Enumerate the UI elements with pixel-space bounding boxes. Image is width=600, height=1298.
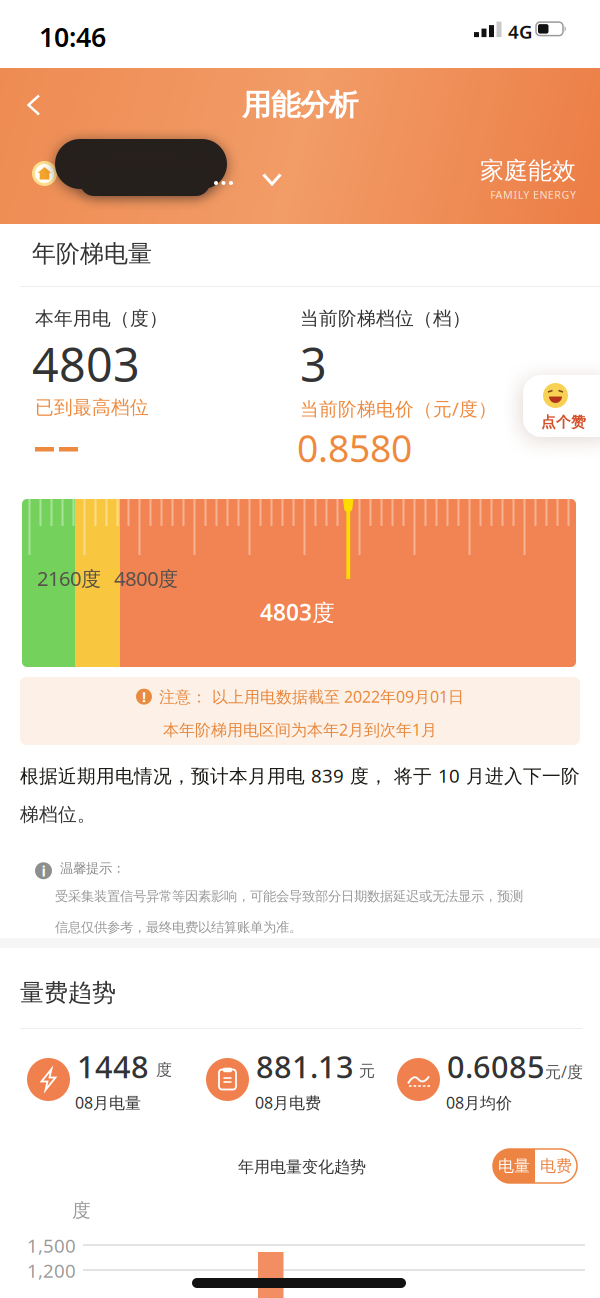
- staticText: 温馨提示：: [60, 860, 125, 876]
- button[interactable]: 选择户号: [12, 132, 292, 198]
- staticText: 年用电量变化趋势: [238, 1157, 366, 1177]
- staticText: 0.6085: [447, 1046, 545, 1087]
- staticText: 度: [156, 1060, 172, 1080]
- staticText: 08月电量: [75, 1092, 141, 1113]
- staticText: 08月电费: [255, 1092, 321, 1113]
- staticText: 10:46: [39, 19, 106, 54]
- staticText: 2160度: [37, 565, 101, 592]
- button[interactable]: Back: [14, 85, 54, 125]
- staticText: 当前阶梯电价（元/度）: [300, 396, 497, 421]
- staticText: 信息仅供参考，最终电费以结算账单为准。: [55, 919, 302, 935]
- button[interactable]: 点个赞: [523, 375, 600, 437]
- staticText: 量费趋势: [20, 978, 116, 1007]
- staticText: 根据近期用电情况，预计本月用电 839 度， 将于 10 月进入下一阶: [20, 763, 580, 788]
- staticText: 3: [300, 333, 327, 395]
- staticText: 元/度: [545, 1061, 583, 1082]
- staticText: 4803: [32, 333, 140, 395]
- button[interactable]: 电费: [535, 1149, 577, 1183]
- staticText: 4803度: [260, 597, 335, 627]
- staticText: 4800度: [114, 565, 178, 592]
- staticText: 点个赞: [541, 413, 586, 431]
- staticText: 年阶梯电量: [32, 239, 152, 268]
- staticText: 元: [359, 1061, 375, 1081]
- staticText: 度: [72, 1199, 91, 1222]
- staticText: 本年用电（度）: [35, 307, 168, 330]
- staticText: 注意： 以上用电数据截至 2022年09月01日: [159, 686, 464, 707]
- staticText: 0.8580: [297, 423, 412, 473]
- staticText: 用能分析: [242, 87, 358, 123]
- staticText: 08月均价: [446, 1092, 512, 1113]
- staticText: 4G: [508, 19, 533, 44]
- staticText: 电费: [540, 1156, 572, 1176]
- staticText: 受采集装置信号异常等因素影响，可能会导致部分日期数据延迟或无法显示，预测: [55, 888, 523, 904]
- staticText: 当前阶梯档位（档）: [300, 307, 471, 330]
- staticText: FAMILY ENERGY: [490, 187, 576, 202]
- staticText: 梯档位。: [20, 803, 96, 826]
- staticText: 1,500: [27, 1233, 76, 1258]
- button[interactable]: 电量: [493, 1149, 535, 1183]
- staticText: 本年阶梯用电区间为本年2月到次年1月: [163, 719, 437, 740]
- staticText: 881.13: [256, 1046, 354, 1087]
- staticText: 家庭能效: [480, 156, 576, 185]
- staticText: 已到最高档位: [35, 396, 149, 419]
- staticText: 1,200: [27, 1258, 76, 1283]
- staticText: 电量: [498, 1156, 530, 1176]
- staticText: i: [41, 861, 45, 880]
- staticText: !: [142, 687, 146, 706]
- staticText: 1448: [77, 1046, 149, 1087]
